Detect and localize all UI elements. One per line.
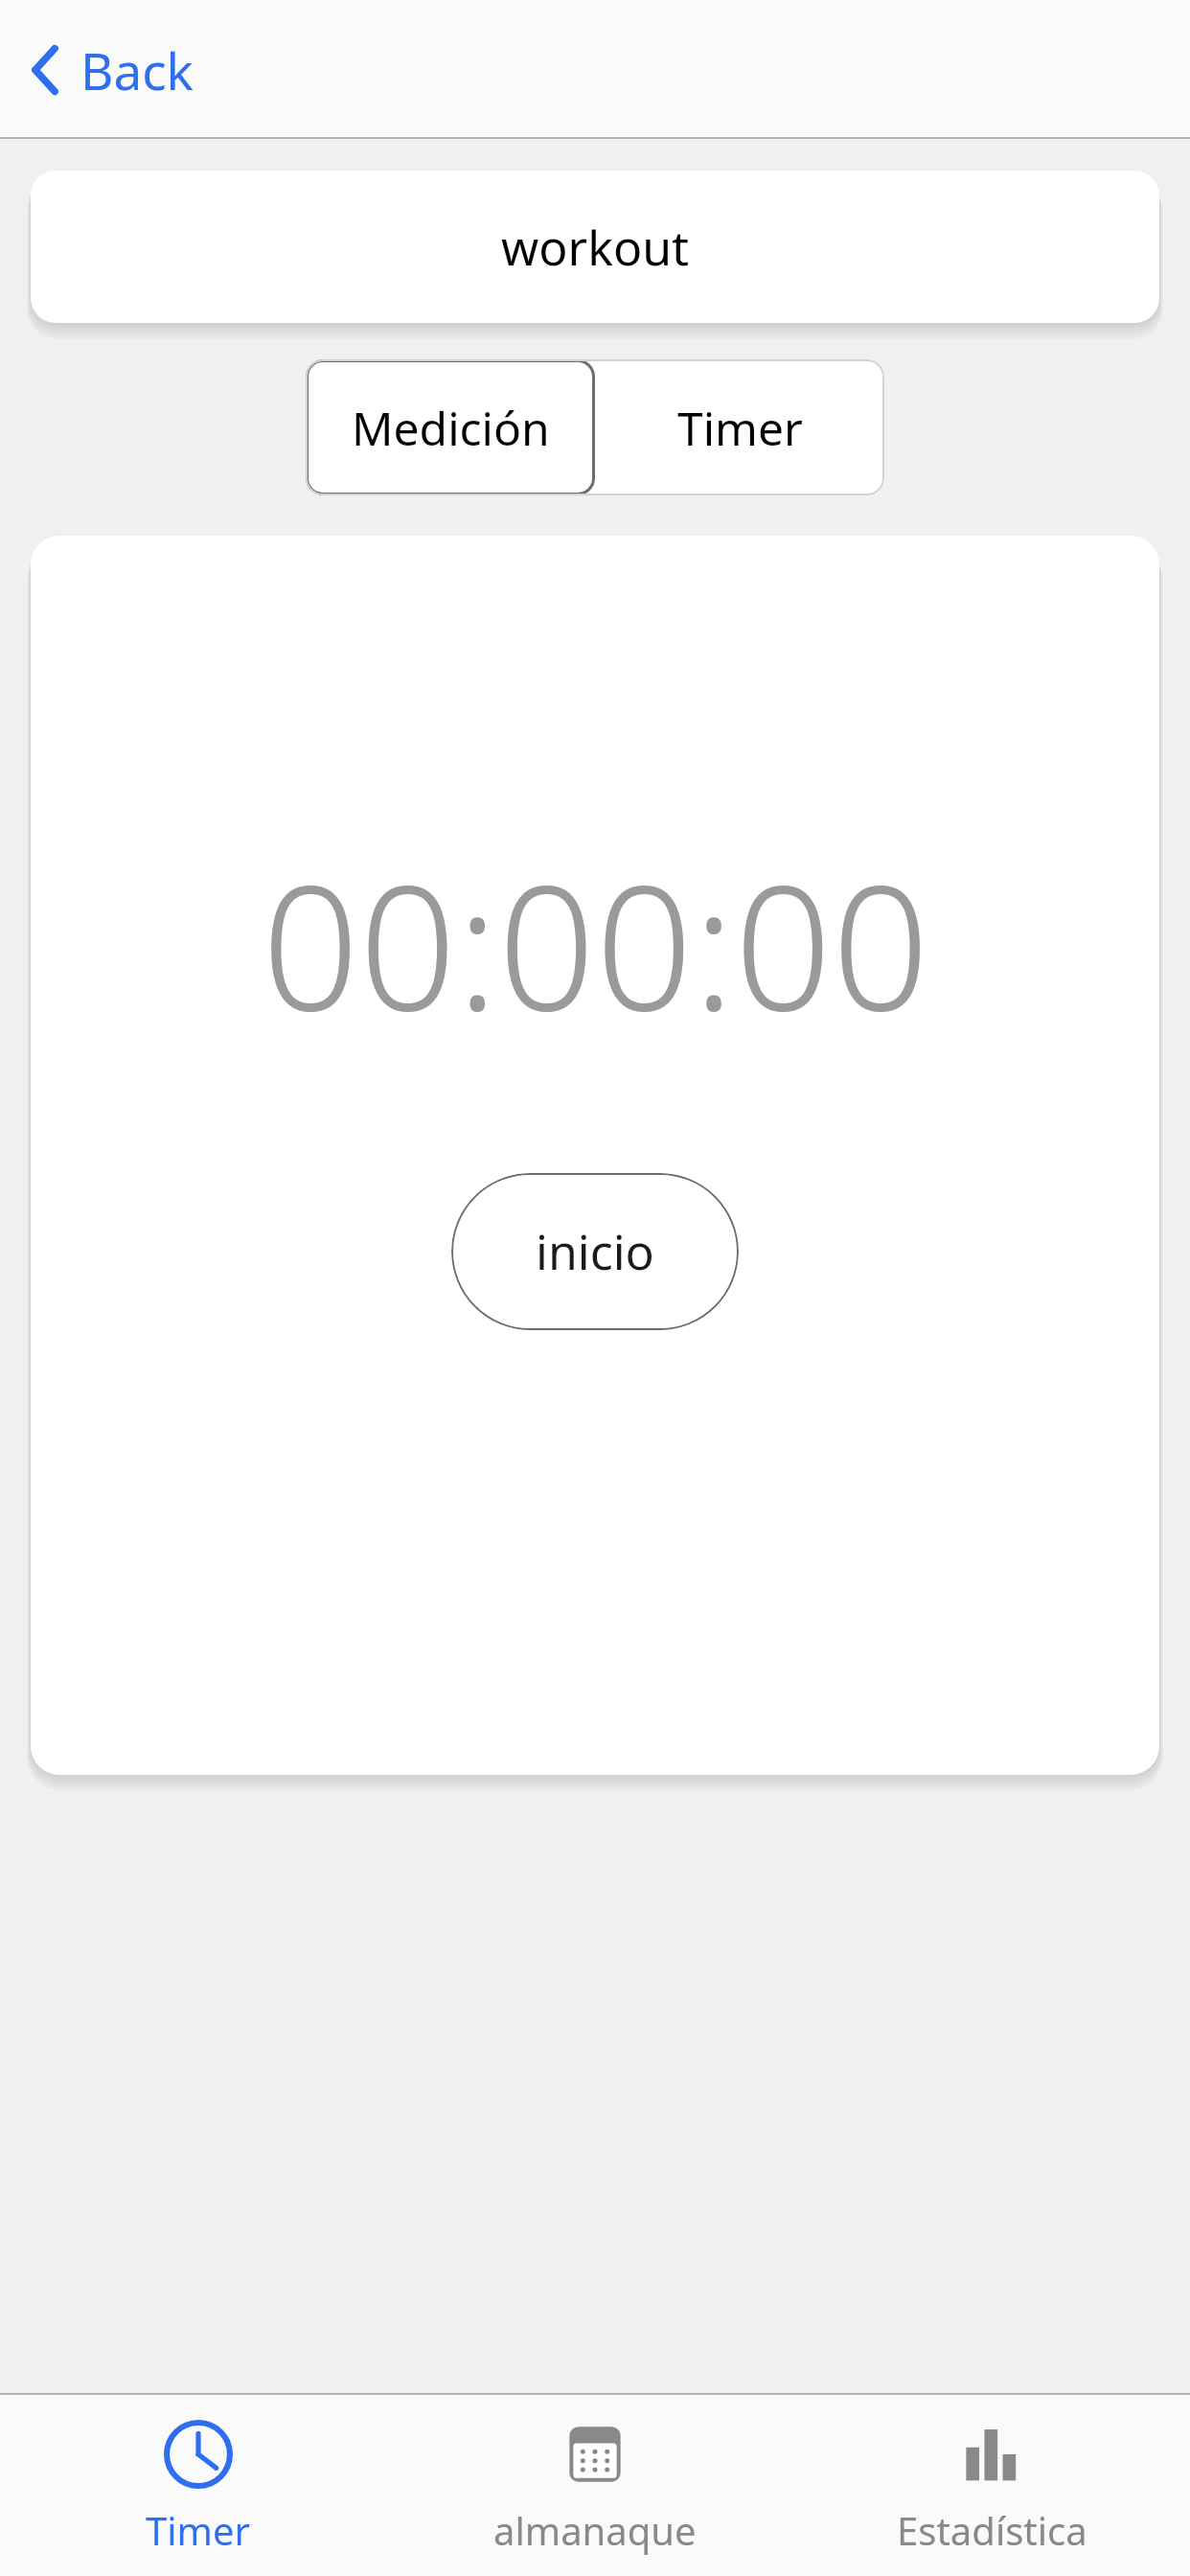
button[interactable]: Timer: [0, 2420, 397, 2576]
staticText: 00:00:00: [262, 828, 929, 1060]
button[interactable]: workout: [31, 171, 1159, 323]
staticText: workout: [501, 215, 690, 280]
button[interactable]: Timer: [595, 359, 884, 495]
other: almanaque: [561, 2420, 629, 2489]
button[interactable]: Back: [13, 26, 209, 114]
staticText: Estadística: [897, 2504, 1087, 2556]
staticText: Timer: [677, 397, 803, 459]
button[interactable]: Estadística: [793, 2420, 1190, 2576]
staticText: almanaque: [493, 2504, 697, 2556]
staticText: Back: [80, 35, 194, 104]
staticText: Medición: [352, 397, 550, 459]
other: Timer: [164, 2420, 233, 2489]
other: Estadística: [957, 2420, 1026, 2489]
staticText: inicio: [536, 1219, 654, 1284]
staticText: Timer: [146, 2504, 251, 2556]
button[interactable]: inicio: [451, 1173, 739, 1330]
button[interactable]: Medición: [306, 359, 595, 495]
button[interactable]: almanaque: [397, 2420, 793, 2576]
